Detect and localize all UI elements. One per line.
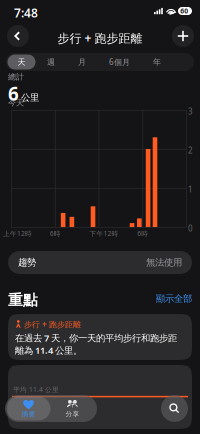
staticText: 趨勢 [18, 257, 36, 268]
button[interactable]: 分享 [50, 396, 94, 420]
staticText: 上午12時 [3, 229, 32, 238]
staticText: 3 [188, 106, 193, 117]
staticText: 6時 [137, 229, 148, 238]
staticText: 7:48 [14, 5, 38, 21]
staticText: 無法使用 [146, 257, 182, 268]
staticText: 週 [47, 57, 55, 67]
button[interactable]: Add [172, 25, 194, 47]
button[interactable]: 年 [141, 54, 172, 69]
staticText: 6個月 [109, 57, 130, 67]
staticText: 總計 [8, 72, 24, 82]
staticText: 60 [180, 7, 188, 15]
staticText: 在過去 7 天，你一天的平均步行和跑步距離為 11.4 公里。 [15, 332, 177, 356]
staticText: 年 [153, 57, 161, 67]
button[interactable]: Back [7, 25, 29, 47]
button[interactable]: 顯示全部 [156, 293, 192, 304]
staticText: 今天 [8, 98, 24, 108]
staticText: 平均 11.4 公里 [13, 385, 59, 394]
staticText: 步行 + 跑步距離 [57, 30, 142, 46]
button[interactable]: 天 [7, 54, 35, 69]
button[interactable]: 週 [35, 54, 66, 69]
staticText: 2 [188, 145, 193, 156]
button[interactable]: Search [161, 395, 188, 422]
staticText: 下午12時 [89, 229, 118, 238]
staticText: 步行 + 跑步距離 [24, 319, 81, 330]
staticText: 顯示全部 [156, 293, 192, 304]
button[interactable]: 摘要 [6, 396, 50, 420]
staticText: 分享 [65, 410, 79, 418]
staticText: 天 [17, 57, 25, 67]
staticText: 公里 [21, 92, 39, 103]
staticText: 摘要 [21, 410, 35, 418]
staticText: 6時 [50, 229, 61, 238]
staticText: 6 [8, 81, 19, 106]
button[interactable]: 6個月 [97, 54, 141, 69]
button[interactable]: 趨勢 [8, 251, 192, 274]
staticText: 月 [78, 57, 86, 67]
button[interactable]: 月 [66, 54, 97, 69]
staticText: 0 [188, 223, 193, 234]
staticText: 重點 [8, 291, 38, 309]
staticText: 1 [188, 184, 193, 195]
